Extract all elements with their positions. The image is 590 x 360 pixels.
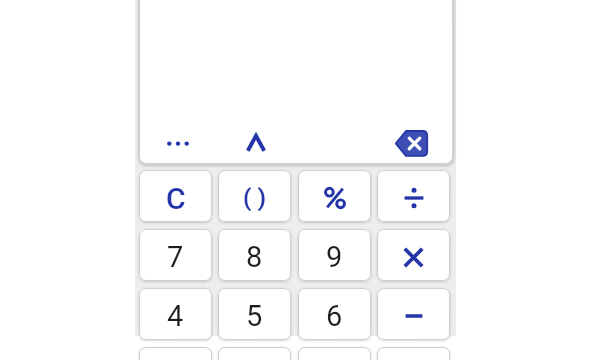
button[interactable]: 7 [139, 229, 212, 281]
button[interactable]: 9 [298, 229, 371, 281]
button[interactable]: C [139, 170, 212, 222]
button[interactable] [139, 347, 212, 360]
button[interactable] [218, 347, 291, 360]
staticText: 8 [246, 240, 263, 274]
button[interactable]: 6 [298, 288, 371, 340]
button[interactable] [243, 129, 269, 157]
button[interactable] [377, 288, 450, 340]
staticText: 6 [326, 299, 343, 333]
button[interactable] [377, 347, 450, 360]
button[interactable]: ( ) [218, 170, 291, 222]
staticText: 4 [167, 299, 184, 333]
staticText: 7 [167, 240, 184, 274]
button[interactable] [392, 127, 430, 160]
staticText: ( ) [243, 184, 266, 212]
button[interactable]: 8 [218, 229, 291, 281]
button[interactable] [298, 347, 371, 360]
button[interactable] [377, 229, 450, 281]
staticText: 9 [326, 240, 343, 274]
button[interactable] [377, 170, 450, 222]
button[interactable]: 4 [139, 288, 212, 340]
staticText: 5 [246, 299, 263, 333]
staticText: C [166, 181, 186, 216]
button[interactable]: 5 [218, 288, 291, 340]
button[interactable] [163, 131, 193, 156]
button[interactable] [298, 170, 371, 222]
